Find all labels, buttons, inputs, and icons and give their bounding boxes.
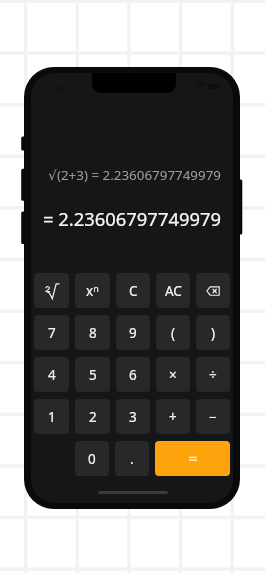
- staticText: 0: [88, 450, 96, 468]
- staticText: = 2.23606797749979: [42, 206, 221, 231]
- staticText: 6: [129, 366, 137, 384]
- button[interactable]: +: [156, 399, 190, 434]
- button[interactable]: Square root: [34, 273, 69, 308]
- button[interactable]: ÷: [196, 357, 230, 392]
- staticText: .: [130, 450, 134, 468]
- staticText: (: [171, 324, 176, 342]
- button[interactable]: ): [196, 315, 230, 350]
- staticText: AC: [165, 282, 182, 300]
- button[interactable]: AC: [156, 273, 190, 308]
- button[interactable]: .: [115, 441, 149, 476]
- button[interactable]: C: [116, 273, 150, 308]
- staticText: ): [211, 324, 216, 342]
- button[interactable]: Backspace: [196, 273, 230, 308]
- button[interactable]: 1: [34, 399, 69, 434]
- button[interactable]: Equals: [155, 441, 230, 476]
- staticText: 7: [48, 324, 56, 342]
- staticText: 8: [89, 324, 97, 342]
- staticText: xn: [86, 282, 99, 300]
- staticText: 3: [129, 408, 137, 426]
- staticText: C: [129, 282, 138, 300]
- button[interactable]: 0: [75, 441, 109, 476]
- button[interactable]: 7: [34, 315, 69, 350]
- staticText: ÷: [209, 366, 217, 384]
- button[interactable]: 6: [116, 357, 150, 392]
- button[interactable]: 4: [34, 357, 69, 392]
- button[interactable]: 2: [75, 399, 110, 434]
- staticText: 5: [89, 366, 97, 384]
- button[interactable]: 5: [75, 357, 110, 392]
- staticText: 2: [89, 408, 97, 426]
- staticText: √(2+3) = 2.23606797749979: [48, 166, 221, 184]
- button[interactable]: 3: [116, 399, 150, 434]
- button[interactable]: 8: [75, 315, 110, 350]
- staticText: 1: [48, 408, 56, 426]
- button[interactable]: x to the power of n: [75, 273, 110, 308]
- button[interactable]: −: [196, 399, 230, 434]
- button[interactable]: (: [156, 315, 190, 350]
- staticText: +: [169, 408, 177, 426]
- button[interactable]: 9: [116, 315, 150, 350]
- button[interactable]: ×: [156, 357, 190, 392]
- staticText: −: [209, 408, 217, 426]
- staticText: 4: [48, 366, 56, 384]
- staticText: ×: [169, 366, 177, 384]
- staticText: 9: [129, 324, 137, 342]
